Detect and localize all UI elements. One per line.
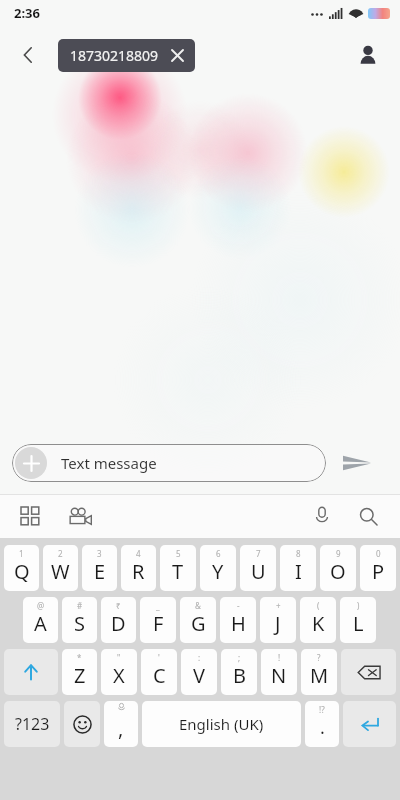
staticText: & — [195, 600, 201, 611]
staticText: ' — [158, 652, 160, 663]
button[interactable]: Add attachment — [12, 444, 326, 482]
button[interactable]: Back — [8, 35, 48, 75]
staticText: 0 — [376, 548, 381, 559]
staticText: ?123 — [15, 713, 50, 735]
staticText: @ — [37, 600, 45, 611]
staticText: + — [276, 600, 281, 611]
staticText: ( — [317, 600, 320, 611]
staticText: - — [237, 600, 240, 611]
button[interactable]: Apps — [12, 498, 48, 534]
staticText: 4 — [136, 548, 141, 559]
staticText: 8 — [296, 548, 301, 559]
staticText: Text message — [61, 453, 157, 473]
staticText: I — [295, 558, 302, 585]
staticText: C — [153, 662, 166, 689]
button[interactable]: Backspace — [341, 649, 396, 695]
staticText: J — [275, 610, 281, 637]
staticText: 7 — [256, 548, 261, 559]
staticText: B — [233, 662, 246, 689]
button[interactable]: & — [180, 597, 216, 643]
staticText: 2:36 — [14, 4, 40, 22]
button[interactable]: * — [62, 649, 97, 695]
button[interactable]: Contact details — [348, 35, 388, 75]
button[interactable]: Send — [326, 432, 388, 494]
staticText: 5 — [176, 548, 181, 559]
button[interactable]: Emoji — [64, 701, 100, 747]
staticText: . — [320, 715, 325, 740]
staticText: # — [77, 600, 83, 611]
staticText: ) — [357, 600, 360, 611]
button[interactable]: 18730218809 — [58, 39, 195, 72]
staticText: H — [231, 610, 246, 637]
button[interactable]: ; — [221, 649, 257, 695]
button[interactable]: !? — [305, 701, 339, 747]
staticText: O — [330, 558, 346, 585]
button[interactable]: + — [260, 597, 296, 643]
button[interactable]: 1 — [4, 545, 39, 591]
button[interactable]: - — [220, 597, 256, 643]
button[interactable]: ₹ — [101, 597, 136, 643]
button[interactable]: Voice input — [304, 498, 340, 534]
staticText: English (UK) — [179, 714, 264, 734]
staticText: , — [118, 715, 124, 742]
staticText: Z — [74, 662, 86, 689]
button[interactable]: Video — [62, 498, 98, 534]
button[interactable]: Shift — [4, 649, 58, 695]
staticText: D — [111, 610, 126, 637]
staticText: " — [117, 652, 121, 663]
button[interactable]: 4 — [121, 545, 156, 591]
button[interactable]: 5 — [160, 545, 196, 591]
staticText: W — [51, 558, 70, 585]
staticText: Y — [212, 558, 224, 585]
button[interactable]: " — [101, 649, 137, 695]
staticText: M — [310, 662, 329, 689]
staticText: ? — [317, 652, 321, 663]
button[interactable]: Search — [350, 498, 386, 534]
staticText: 2 — [58, 548, 63, 559]
button[interactable]: ( — [300, 597, 336, 643]
staticText: G — [191, 610, 206, 637]
staticText: N — [271, 662, 287, 689]
button[interactable]: 6 — [200, 545, 236, 591]
staticText: ! — [278, 652, 281, 663]
button[interactable]: : — [181, 649, 217, 695]
button[interactable]: ! — [261, 649, 297, 695]
staticText: A — [34, 610, 47, 637]
staticText: * — [77, 652, 82, 663]
staticText: X — [113, 662, 125, 689]
button[interactable]: Comma — [104, 701, 138, 747]
staticText: ₹ — [116, 600, 121, 611]
staticText: K — [312, 610, 325, 637]
button[interactable]: ) — [340, 597, 376, 643]
button[interactable]: ? — [301, 649, 337, 695]
staticText: 18730218809 — [70, 46, 159, 65]
staticText: E — [94, 558, 106, 585]
staticText: 1 — [19, 548, 24, 559]
staticText: 9 — [336, 548, 341, 559]
button[interactable]: English (UK) — [142, 701, 301, 747]
staticText: ; — [238, 652, 241, 663]
button[interactable]: ' — [141, 649, 177, 695]
staticText: S — [74, 610, 85, 637]
button[interactable]: _ — [140, 597, 176, 643]
button[interactable]: # — [62, 597, 97, 643]
staticText: F — [153, 610, 164, 637]
button[interactable]: Enter — [343, 701, 396, 747]
button[interactable]: 2 — [43, 545, 78, 591]
staticText: _ — [156, 600, 160, 611]
button[interactable]: Add attachment — [15, 447, 47, 479]
button[interactable]: 0 — [360, 545, 396, 591]
button[interactable]: 3 — [82, 545, 117, 591]
button[interactable]: 9 — [320, 545, 356, 591]
staticText: !? — [319, 704, 325, 715]
staticText: 6 — [216, 548, 221, 559]
button[interactable]: @ — [23, 597, 58, 643]
staticText: : — [198, 652, 201, 663]
staticText: P — [372, 558, 385, 585]
button[interactable]: 7 — [240, 545, 276, 591]
staticText: Q — [14, 558, 30, 585]
button[interactable]: 8 — [280, 545, 316, 591]
staticText: 3 — [97, 548, 102, 559]
staticText: U — [251, 558, 266, 585]
button[interactable]: ?123 — [4, 701, 60, 747]
